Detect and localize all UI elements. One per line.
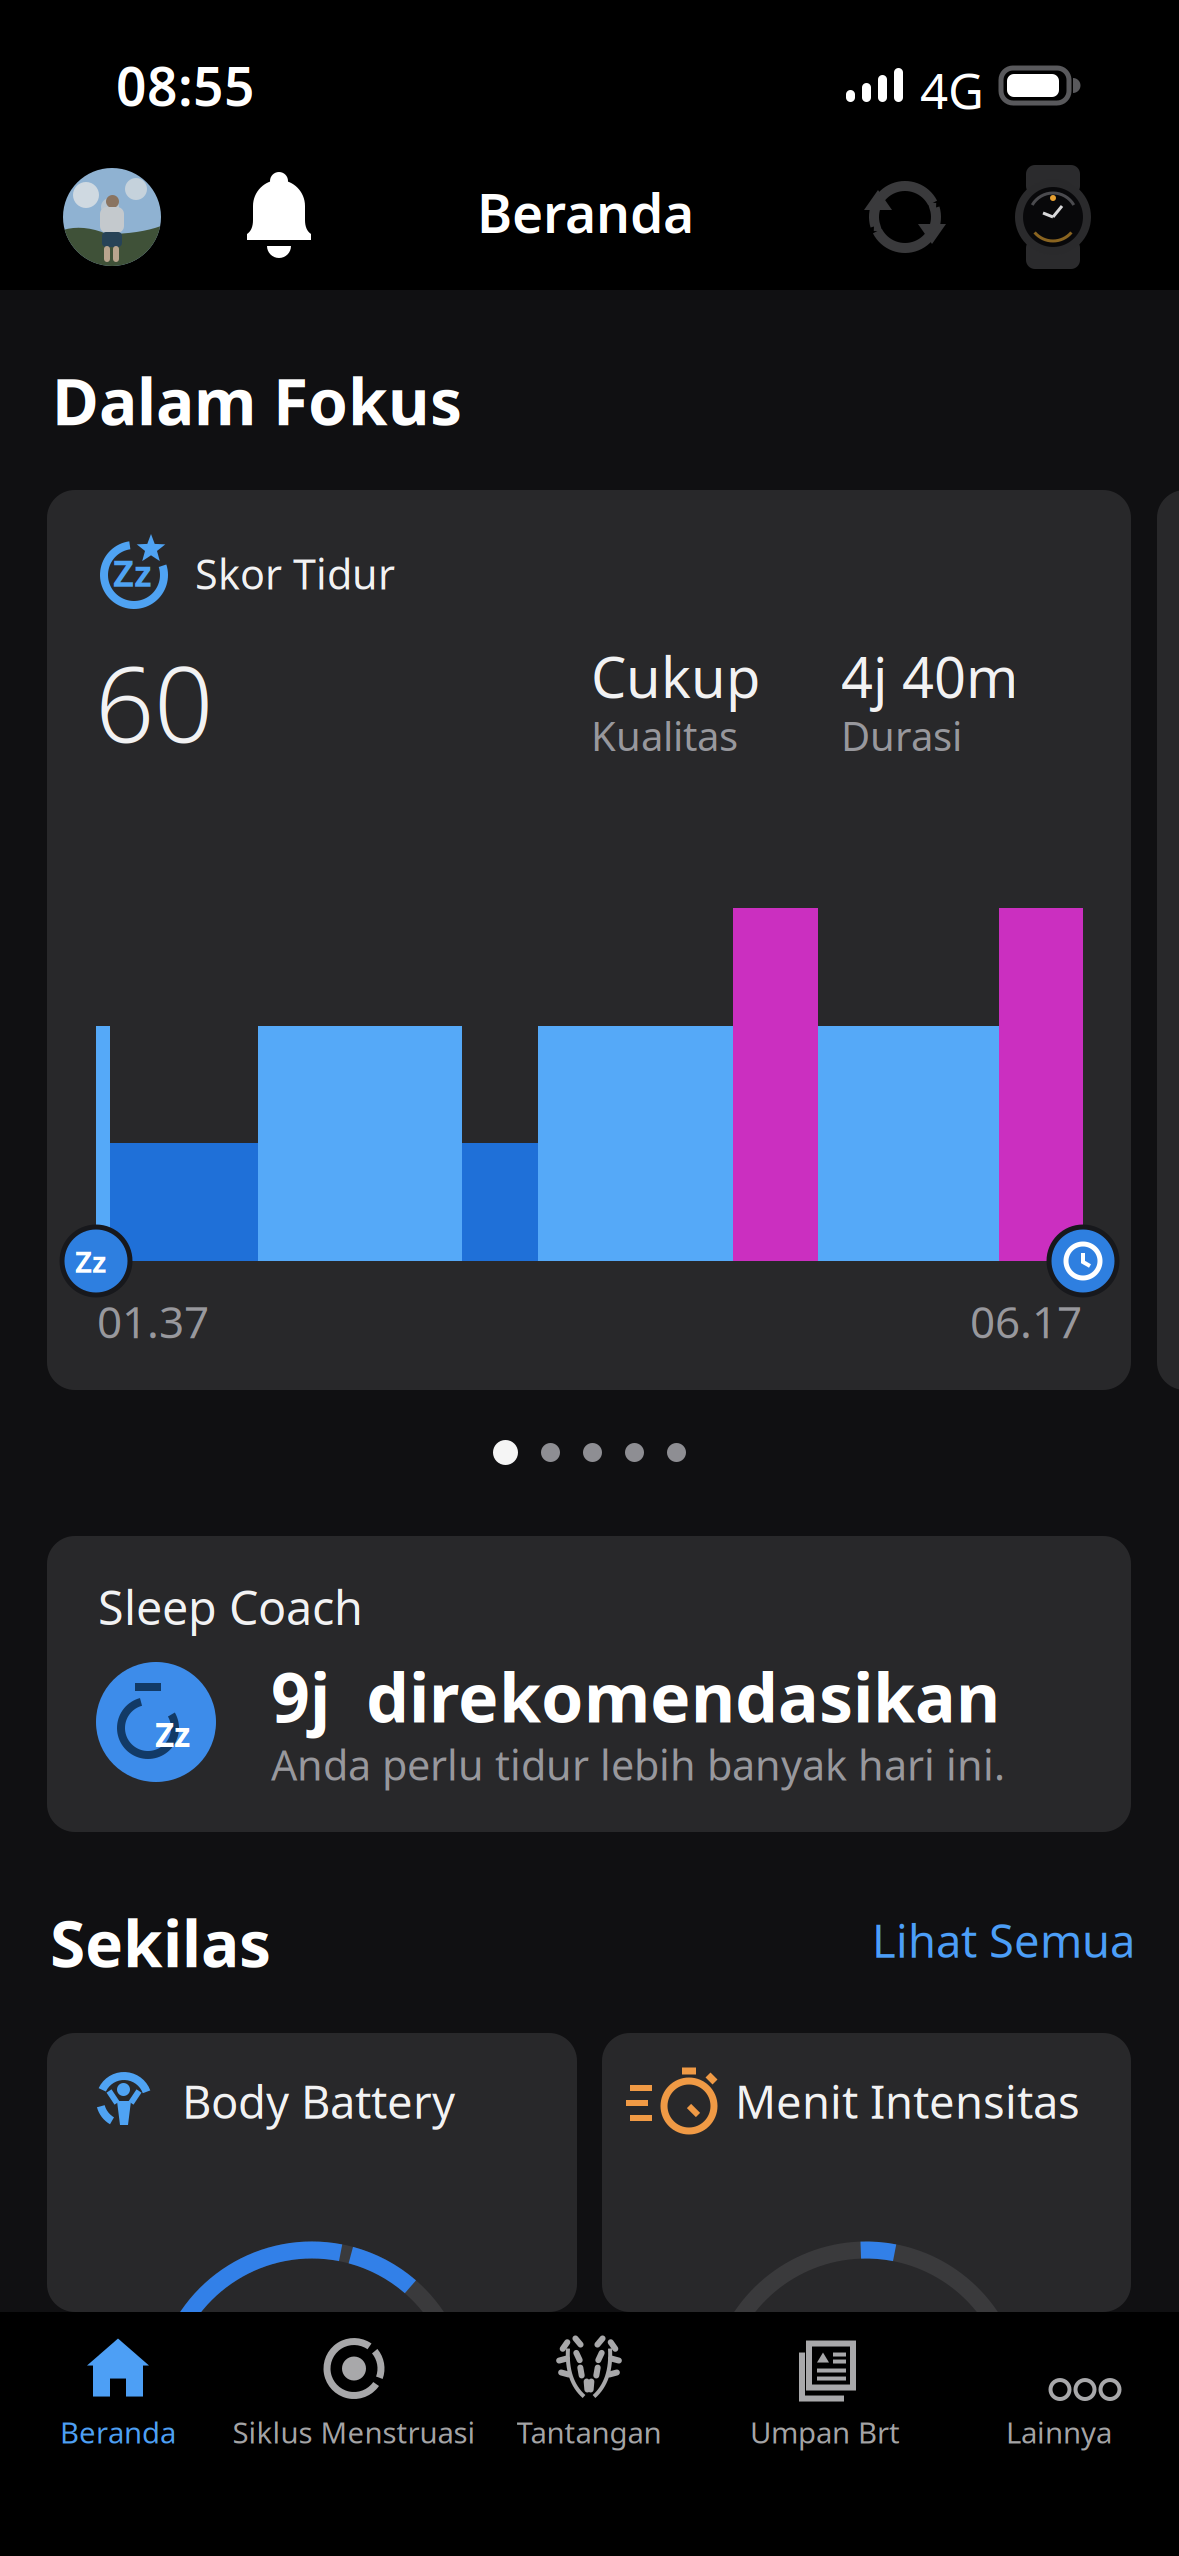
staticText: Zz xyxy=(155,1712,190,1756)
button[interactable]: Lainnya xyxy=(944,2330,1174,2460)
staticText: Umpan Brt xyxy=(750,2412,900,2451)
button[interactable]: Beranda xyxy=(3,2330,233,2460)
staticText: 9j direkomendasikan xyxy=(271,1651,1000,1741)
staticText: Menit Intensitas xyxy=(735,2071,1080,2131)
staticText: Dalam Fokus xyxy=(52,358,462,443)
staticText: Sekilas xyxy=(50,1900,271,1985)
button[interactable]: Sinkronkan xyxy=(862,174,948,260)
staticText: 06.17 xyxy=(970,1292,1082,1350)
staticText: Beranda xyxy=(60,2412,176,2451)
staticText: Lainnya xyxy=(1006,2412,1112,2451)
staticText: 60 xyxy=(95,633,213,771)
staticText: Lihat Semua xyxy=(872,1910,1135,1970)
staticText: 4j 40m xyxy=(841,639,1018,713)
staticText: Skor Tidur xyxy=(195,546,395,601)
staticText: 08:55 xyxy=(116,50,255,121)
staticText: Cukup xyxy=(591,639,760,713)
staticText: Sleep Coach xyxy=(98,1576,363,1638)
staticText: 4G xyxy=(920,57,984,122)
staticText: Anda perlu tidur lebih banyak hari ini. xyxy=(271,1737,1005,1792)
button[interactable]: Siklus Menstruasi xyxy=(239,2330,469,2460)
button[interactable]: Sleep Coach xyxy=(47,1536,1131,1832)
staticText: Tantangan xyxy=(516,2412,661,2451)
button[interactable]: Menit Intensitas xyxy=(602,2033,1131,2312)
button[interactable]: Tantangan xyxy=(474,2330,704,2460)
staticText: Durasi xyxy=(841,709,962,762)
button[interactable]: Zz xyxy=(47,490,1131,1390)
staticText: Zz xyxy=(113,549,152,597)
staticText: Body Battery xyxy=(182,2071,455,2131)
button[interactable]: Perangkat xyxy=(1010,165,1096,269)
button[interactable]: Body Battery xyxy=(47,2033,577,2312)
button[interactable]: Umpan Brt xyxy=(710,2330,940,2460)
staticText: Beranda xyxy=(477,177,694,248)
staticText: Siklus Menstruasi xyxy=(232,2412,475,2451)
button[interactable]: Notifikasi xyxy=(239,172,319,262)
staticText: 01.37 xyxy=(97,1292,209,1350)
button[interactable]: Lihat Semua xyxy=(872,1910,1135,1970)
staticText: Kualitas xyxy=(591,709,738,762)
staticText: Zz xyxy=(75,1242,106,1281)
